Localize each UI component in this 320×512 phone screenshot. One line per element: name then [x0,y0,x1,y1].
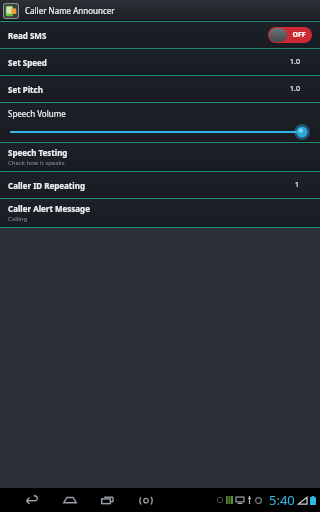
staticText: Check how it speaks [8,159,65,167]
button[interactable]: Read SMS toggle, off [268,27,312,43]
staticText: Speech Volume [8,108,66,119]
button[interactable]: Caller Alert Message [0,199,320,227]
staticText: Calling [8,215,28,223]
button[interactable]: Back [24,492,40,508]
staticText: Speech Testing [8,147,68,158]
staticText: 1 [295,180,300,190]
other: App icon [3,3,19,19]
staticText: Read SMS [8,30,47,41]
staticText: Set Speed [8,57,47,68]
button[interactable]: Screenshot [138,492,154,508]
button[interactable]: Speech Testing [0,143,320,171]
staticText: Caller ID Repeating [8,180,85,191]
staticText: 1.0 [290,57,300,67]
staticText: 1.0 [290,84,300,94]
button[interactable]: Status [217,491,316,509]
button[interactable]: Read SMS [0,22,320,48]
staticText: 5:40 [269,491,295,509]
staticText: Set Pitch [8,84,43,95]
button[interactable]: Set Speed [0,49,320,75]
button[interactable]: Caller ID Repeating [0,172,320,198]
staticText: Caller Name Announcer [25,5,115,16]
button[interactable]: Speech Volume [0,103,320,142]
button[interactable]: Set Pitch [0,76,320,102]
button[interactable]: Home [62,492,78,508]
button[interactable]: Recent apps [100,492,116,508]
staticText: Caller Alert Message [8,203,90,214]
staticText: OFF [292,30,306,40]
